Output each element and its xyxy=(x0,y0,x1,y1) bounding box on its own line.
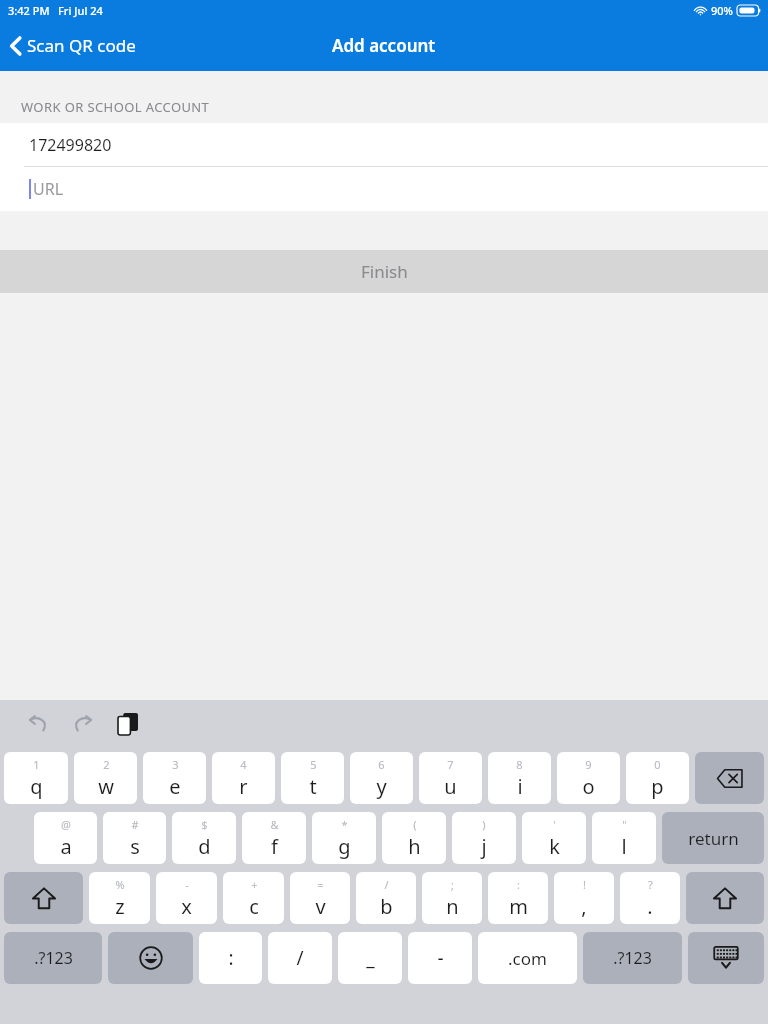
staticText: Fri Jul 24 xyxy=(58,3,103,18)
button[interactable]: Hide keyboard xyxy=(688,932,764,984)
button[interactable]: - xyxy=(408,932,472,984)
button[interactable]: @ xyxy=(34,812,97,864)
button[interactable]: 5 xyxy=(281,752,344,804)
staticText: ! xyxy=(583,877,586,892)
staticText: _ xyxy=(366,945,375,971)
staticText: .com xyxy=(508,947,547,970)
button[interactable]: : xyxy=(488,872,548,924)
button[interactable]: Backspace xyxy=(695,752,764,804)
staticText: ; xyxy=(451,877,454,892)
staticText: # xyxy=(131,817,139,832)
staticText: % xyxy=(115,877,125,892)
staticText: ) xyxy=(482,817,486,832)
staticText: - xyxy=(185,877,189,892)
button[interactable]: Redo xyxy=(63,704,103,744)
button[interactable]: Shift xyxy=(4,872,83,924)
button[interactable]: 3 xyxy=(143,752,206,804)
staticText: WORK OR SCHOOL ACCOUNT xyxy=(21,98,210,116)
button[interactable]: & xyxy=(242,812,306,864)
button[interactable]: - xyxy=(156,872,217,924)
button[interactable]: _ xyxy=(338,932,402,984)
staticText: o xyxy=(582,773,595,800)
button[interactable]: Shift xyxy=(686,872,764,924)
button[interactable]: Paste xyxy=(108,704,148,744)
button[interactable]: return xyxy=(662,812,764,864)
staticText: m xyxy=(509,893,528,920)
staticText: / xyxy=(296,945,304,971)
button[interactable]: URL xyxy=(0,167,768,211)
staticText: " xyxy=(622,817,627,832)
button[interactable]: Scan QR code xyxy=(0,28,148,63)
button[interactable]: 2 xyxy=(74,752,137,804)
button[interactable]: : xyxy=(199,932,262,984)
staticText: 8 xyxy=(516,757,523,772)
button[interactable]: ? xyxy=(620,872,680,924)
button[interactable]: 1 xyxy=(4,752,68,804)
button[interactable]: 0 xyxy=(626,752,689,804)
staticText: = xyxy=(317,877,324,892)
staticText: l xyxy=(621,833,627,860)
button[interactable]: 4 xyxy=(212,752,275,804)
staticText: h xyxy=(408,833,421,860)
button[interactable]: Finish xyxy=(0,250,768,293)
staticText: z xyxy=(115,893,125,920)
button[interactable]: $ xyxy=(172,812,236,864)
staticText: 9 xyxy=(585,757,592,772)
button[interactable]: / xyxy=(356,872,416,924)
staticText: URL xyxy=(33,178,64,200)
staticText: v xyxy=(315,893,326,920)
staticText: 90% xyxy=(711,3,733,18)
staticText: f xyxy=(271,833,278,860)
staticText: return xyxy=(688,827,739,850)
button[interactable]: 8 xyxy=(488,752,551,804)
button[interactable]: .?123 xyxy=(583,932,682,984)
staticText: c xyxy=(249,893,259,920)
staticText: 3 xyxy=(172,757,179,772)
button[interactable]: .?123 xyxy=(4,932,102,984)
staticText: b xyxy=(380,893,393,920)
button[interactable]: + xyxy=(223,872,284,924)
button[interactable]: = xyxy=(290,872,350,924)
staticText: k xyxy=(549,833,560,860)
button[interactable]: " xyxy=(592,812,656,864)
staticText: @ xyxy=(61,817,71,832)
staticText: & xyxy=(270,817,279,832)
staticText: Finish xyxy=(361,260,408,283)
button[interactable]: * xyxy=(312,812,376,864)
button[interactable]: % xyxy=(89,872,150,924)
staticText: n xyxy=(446,893,459,920)
staticText: w xyxy=(98,773,114,800)
staticText: y xyxy=(376,773,387,800)
button[interactable]: 7 xyxy=(419,752,482,804)
staticText: r xyxy=(239,773,248,800)
button[interactable]: ) xyxy=(452,812,516,864)
staticText: 0 xyxy=(654,757,661,772)
button[interactable]: 9 xyxy=(557,752,620,804)
button[interactable]: .com xyxy=(478,932,577,984)
button[interactable]: # xyxy=(103,812,166,864)
staticText: ? xyxy=(648,877,653,892)
staticText: 5 xyxy=(310,757,317,772)
staticText: / xyxy=(384,877,389,892)
button[interactable]: 6 xyxy=(350,752,413,804)
staticText: : xyxy=(228,945,234,971)
staticText: j xyxy=(481,833,487,860)
staticText: i xyxy=(517,773,523,800)
staticText: g xyxy=(338,833,351,860)
button[interactable]: ! xyxy=(554,872,614,924)
staticText: * xyxy=(341,817,348,832)
staticText: e xyxy=(169,773,181,800)
button[interactable]: 172499820 xyxy=(0,123,768,166)
button[interactable]: Emoji xyxy=(108,932,193,984)
staticText: $ xyxy=(201,817,208,832)
button[interactable]: ; xyxy=(422,872,482,924)
button[interactable]: ( xyxy=(382,812,446,864)
staticText: d xyxy=(198,833,211,860)
button[interactable]: / xyxy=(268,932,332,984)
staticText: ( xyxy=(413,817,417,832)
staticText: q xyxy=(30,773,43,800)
button[interactable]: ' xyxy=(522,812,586,864)
staticText: u xyxy=(444,773,457,800)
staticText: Scan QR code xyxy=(27,34,136,57)
button[interactable]: Undo xyxy=(18,704,58,744)
